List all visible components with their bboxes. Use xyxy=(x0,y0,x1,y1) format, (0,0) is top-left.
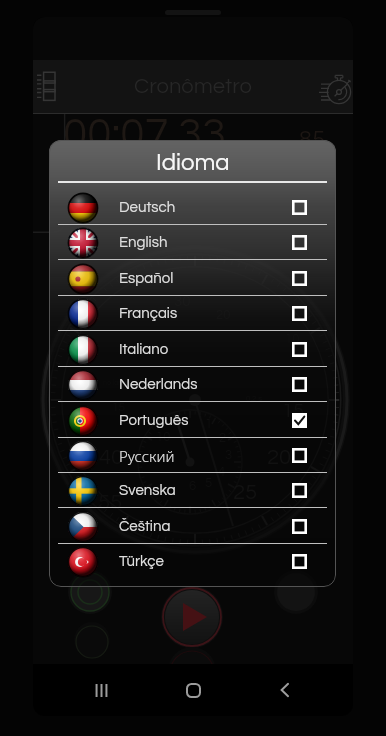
staticText: Español xyxy=(119,271,174,286)
staticText: 4 xyxy=(218,465,226,478)
button[interactable]: Home xyxy=(169,666,217,714)
staticText: 20 xyxy=(267,446,292,469)
button[interactable]: Deutsch xyxy=(49,190,336,225)
staticText: 10 xyxy=(156,430,171,443)
staticText: 00:02.85 xyxy=(161,189,250,214)
staticText: 25 xyxy=(233,481,258,504)
button[interactable]: Português xyxy=(49,403,336,438)
staticText: Türkçe xyxy=(119,554,164,569)
staticText: Svenska xyxy=(119,483,176,498)
staticText: no lang xyxy=(103,379,127,386)
button[interactable]: English xyxy=(49,225,336,260)
staticText: 15 xyxy=(282,401,304,422)
staticText: Deutsch xyxy=(119,200,176,215)
button[interactable]: Nederlands xyxy=(49,367,336,402)
staticText: 40 xyxy=(99,446,124,469)
button[interactable]: Español xyxy=(49,261,336,296)
button[interactable]: Русский xyxy=(49,438,336,473)
staticText: Volta 7 xyxy=(206,175,246,188)
button[interactable]: Türkçe xyxy=(49,544,336,579)
staticText: .85 xyxy=(294,127,326,152)
staticText: 2 xyxy=(219,431,227,444)
staticText: English xyxy=(119,235,168,250)
staticText: Português xyxy=(119,413,189,428)
button[interactable]: Svenska xyxy=(49,473,336,508)
staticText: 55 xyxy=(98,491,123,514)
button[interactable]: Laps list xyxy=(33,65,68,109)
button[interactable]: Back xyxy=(261,666,309,714)
staticText: 15 xyxy=(112,401,126,413)
staticText: Čeština xyxy=(119,519,171,534)
button[interactable]: Italiano xyxy=(49,332,336,367)
staticText: Italiano xyxy=(119,342,169,357)
staticText: 00:07.33 xyxy=(63,112,227,157)
button[interactable]: Stopwatch xyxy=(312,66,353,110)
staticText: 0.2 s xyxy=(246,394,262,402)
staticText: Français xyxy=(119,306,178,321)
staticText: 10 xyxy=(285,332,300,345)
staticText: Idioma xyxy=(156,150,230,175)
staticText: Cronômetro xyxy=(134,75,252,98)
staticText: Nederlands xyxy=(119,377,198,392)
button[interactable]: Français xyxy=(49,296,336,331)
button[interactable]: Recents xyxy=(77,666,125,714)
staticText: 30 xyxy=(174,294,191,309)
staticText: Русский xyxy=(119,446,175,466)
button[interactable]: Čeština xyxy=(49,509,336,544)
